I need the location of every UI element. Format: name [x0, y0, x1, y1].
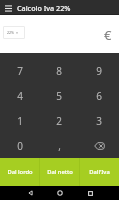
button[interactable]: Dall'Iva [80, 158, 119, 186]
staticText: 9 [96, 64, 102, 78]
staticText: 2 [56, 114, 62, 128]
staticText: 3 [96, 114, 102, 128]
button[interactable]: Recent apps [82, 186, 98, 200]
staticText: , [58, 139, 61, 153]
button[interactable]: 5 [39, 83, 79, 108]
staticText: 5 [56, 89, 62, 103]
staticText: Dal netto [47, 168, 73, 176]
staticText: Dal lordo [7, 168, 33, 176]
button[interactable]: 6 [79, 83, 119, 108]
other: Delete [94, 142, 105, 150]
staticText: 6 [96, 89, 102, 103]
staticText: 4 [17, 89, 23, 103]
button[interactable]: 2 [39, 108, 79, 133]
staticText: 8 [56, 64, 62, 78]
button[interactable]: Back [22, 186, 38, 200]
button[interactable]: 0 [0, 133, 39, 158]
button[interactable]: Menu [0, 0, 17, 15]
button[interactable]: 7 [0, 58, 39, 83]
staticText: Calcolo Iva 22% [17, 3, 71, 13]
button[interactable]: Dal lordo [0, 158, 39, 186]
button[interactable]: 3 [79, 108, 119, 133]
staticText: Dall'Iva [89, 168, 110, 176]
button[interactable]: 22% [3, 26, 25, 39]
button[interactable]: 8 [39, 58, 79, 83]
button[interactable]: 4 [0, 83, 39, 108]
button[interactable]: Delete [79, 133, 119, 158]
button[interactable]: Home [52, 186, 68, 200]
staticText: 22% [7, 30, 15, 35]
button[interactable]: 9 [79, 58, 119, 83]
staticText: 0 [17, 139, 23, 153]
staticText: 7 [17, 64, 23, 78]
staticText: 1 [17, 114, 23, 128]
button[interactable]: , [39, 133, 79, 158]
button[interactable]: 1 [0, 108, 39, 133]
button[interactable]: Dal netto [40, 158, 79, 186]
staticText: € [104, 26, 112, 44]
